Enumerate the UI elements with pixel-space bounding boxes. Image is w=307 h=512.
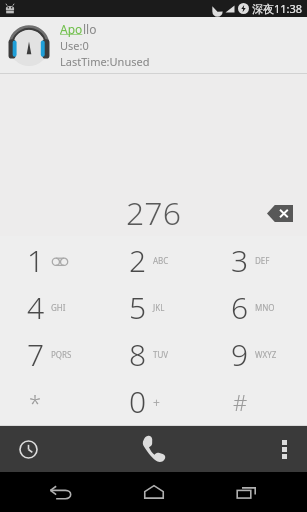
staticText: 0 [129,381,147,422]
staticText: * [29,387,42,417]
staticText: + [153,394,160,410]
button[interactable]: * [0,378,103,425]
button[interactable]: Backspace [263,196,297,230]
button[interactable]: 4 [0,284,103,331]
staticText: # [233,387,248,417]
staticText: 276 [126,191,181,235]
staticText: Apo [60,21,83,37]
staticText: DEF [255,255,270,266]
button[interactable]: 1 [0,236,103,284]
button[interactable]: More options [261,426,307,472]
button[interactable]: Apo [0,17,307,73]
button[interactable]: Recent apps [214,472,278,512]
staticText: Use:0 [60,38,89,53]
button[interactable]: Back [29,472,93,512]
staticText: 深夜11:38 [252,1,303,16]
button[interactable]: 3 [205,236,307,284]
staticText: 8 [129,334,147,375]
staticText: JKL [153,302,165,313]
staticText: GHI [51,302,66,313]
staticText: 1 [27,240,45,281]
staticText: ABC [153,255,169,266]
button[interactable]: 0 [103,378,205,425]
button[interactable]: Home [122,472,186,512]
staticText: llo [83,21,97,37]
staticText: 5 [129,287,147,328]
staticText: 9 [231,334,249,375]
staticText: LastTime:Unused [60,54,150,69]
staticText: PQRS [51,349,72,360]
staticText: 4 [27,287,45,328]
staticText: TUV [153,349,169,360]
staticText: WXYZ [255,349,277,360]
button[interactable]: 8 [103,331,205,378]
button[interactable]: 9 [205,331,307,378]
button[interactable]: 7 [0,331,103,378]
button[interactable]: Call [109,426,199,472]
staticText: 3 [231,240,249,281]
button[interactable]: 2 [103,236,205,284]
staticText: MNO [255,302,275,313]
button[interactable]: # [205,378,307,425]
staticText: 7 [27,334,45,375]
staticText: 6 [231,287,249,328]
button[interactable]: 6 [205,284,307,331]
button[interactable]: 5 [103,284,205,331]
staticText: 2 [129,240,147,281]
button[interactable]: Call history [0,426,56,472]
